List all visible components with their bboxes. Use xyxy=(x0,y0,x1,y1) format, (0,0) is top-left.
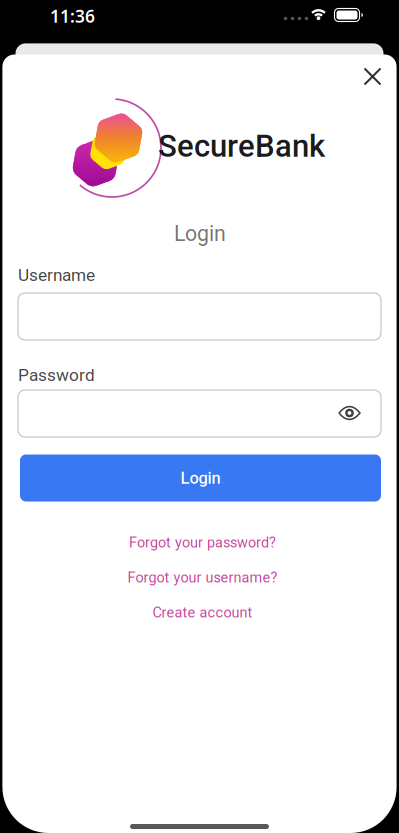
button[interactable]: Forgot your password? xyxy=(123,530,282,555)
button[interactable]: Close xyxy=(355,59,389,93)
textField[interactable] xyxy=(18,398,381,428)
staticText: SecureBank xyxy=(158,128,325,164)
button[interactable]: Create account xyxy=(146,600,258,625)
staticText: Forgot your username? xyxy=(127,569,277,586)
staticText: Forgot your password? xyxy=(129,534,276,551)
button[interactable]: Show password xyxy=(332,396,366,430)
button[interactable]: Login xyxy=(20,454,381,501)
staticText: Login xyxy=(180,468,220,488)
staticText: Username xyxy=(18,265,95,285)
button[interactable]: Forgot your username? xyxy=(121,565,283,590)
staticText: Login xyxy=(174,221,226,246)
staticText: Password xyxy=(18,365,95,385)
staticText: Create account xyxy=(152,604,252,621)
staticText: 11:36 xyxy=(50,4,95,27)
